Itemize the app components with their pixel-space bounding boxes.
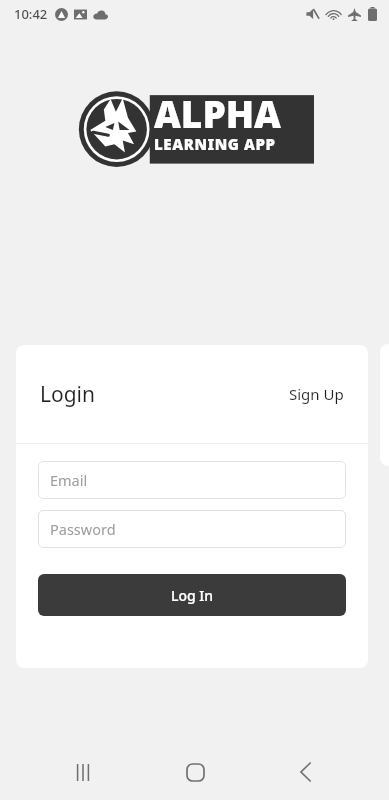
button[interactable]: Back: [278, 744, 334, 800]
button[interactable]: Home: [167, 744, 223, 800]
staticText: ALPHA: [154, 88, 281, 138]
button[interactable]: Log In: [38, 574, 346, 616]
staticText: Password: [50, 519, 116, 539]
staticText: Sign Up: [289, 384, 344, 404]
staticText: Login: [40, 380, 96, 409]
staticText: 10:42: [14, 5, 48, 23]
button[interactable]: Email: [38, 461, 346, 499]
button[interactable]: Recent apps: [55, 744, 111, 800]
button[interactable]: Password: [38, 510, 346, 548]
staticText: Log In: [171, 586, 214, 605]
staticText: LEARNING APP: [154, 134, 276, 154]
button[interactable]: Login: [38, 374, 98, 415]
staticText: Email: [50, 470, 88, 490]
button[interactable]: Sign Up: [287, 376, 346, 412]
